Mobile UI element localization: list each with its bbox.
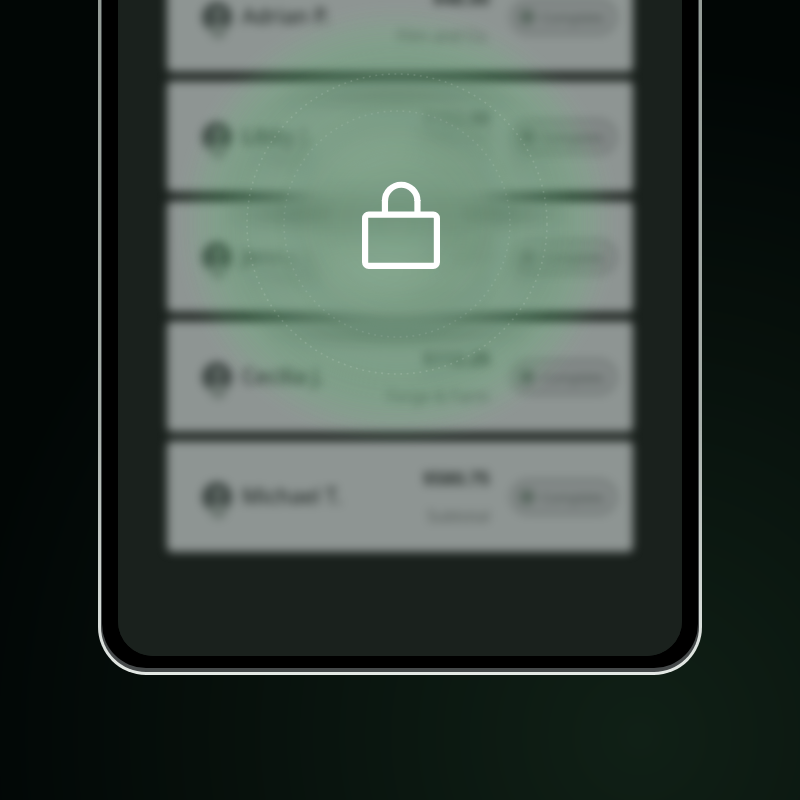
staticText: Libby J. bbox=[242, 122, 313, 151]
button[interactable]: Jenna R. bbox=[167, 218, 633, 329]
staticText: Forge & Farm bbox=[387, 385, 490, 407]
button[interactable]: Libby J. bbox=[167, 81, 633, 192]
button[interactable]: Complete bbox=[510, 376, 617, 412]
staticText: Cecilia J. bbox=[242, 362, 324, 391]
staticText: Jenna R. bbox=[242, 242, 323, 271]
button[interactable]: Jenna R. bbox=[167, 201, 633, 312]
staticText: Complete bbox=[541, 145, 605, 164]
button[interactable]: Complete bbox=[510, 239, 617, 275]
staticText: Adrian P. bbox=[242, 19, 330, 48]
button[interactable]: Complete bbox=[510, 496, 617, 532]
staticText: Michael T. bbox=[242, 499, 342, 528]
button[interactable]: Libby J. bbox=[167, 98, 633, 209]
staticText: Jenna R. bbox=[242, 259, 323, 288]
staticText: $112.25 bbox=[423, 346, 490, 371]
button[interactable]: Libby J. bbox=[167, 98, 633, 209]
staticText: $152.00 bbox=[423, 106, 490, 131]
staticText: Complete bbox=[541, 505, 605, 524]
button[interactable]: Complete bbox=[510, 16, 617, 52]
staticText: Green Market bbox=[386, 162, 490, 184]
button[interactable]: Complete bbox=[510, 256, 617, 292]
staticText: $48.00 bbox=[433, 3, 490, 28]
button[interactable]: Complete bbox=[510, 119, 617, 155]
button[interactable]: Complete bbox=[510, 359, 617, 395]
staticText: $76.50 bbox=[433, 243, 490, 268]
staticText: Complete bbox=[541, 128, 605, 147]
button[interactable]: Adrian P. bbox=[167, 0, 633, 89]
button[interactable]: Complete bbox=[510, 0, 617, 35]
button[interactable]: Cecilia J. bbox=[167, 321, 633, 432]
staticText: Green Market bbox=[386, 162, 490, 184]
button[interactable]: Michael T. bbox=[167, 458, 633, 569]
staticText: Cecilia J. bbox=[242, 379, 324, 408]
staticText: Jenna R. bbox=[242, 259, 323, 288]
staticText: Green Market bbox=[386, 145, 490, 167]
staticText: Adrian P. bbox=[242, 19, 330, 48]
staticText: Complete bbox=[541, 368, 605, 387]
staticText: $76.50 bbox=[433, 226, 490, 251]
button[interactable]: Complete bbox=[510, 136, 617, 172]
staticText: Michael T. bbox=[242, 499, 342, 528]
staticText: $112.25 bbox=[423, 363, 490, 388]
button[interactable]: Michael T. bbox=[167, 441, 633, 552]
staticText: Forge & Farm bbox=[387, 402, 490, 424]
staticText: Adrian P. bbox=[242, 2, 330, 31]
staticText: Complete bbox=[541, 265, 605, 284]
button[interactable]: Locked bbox=[355, 172, 447, 276]
staticText: Subtotal bbox=[427, 505, 490, 527]
staticText: Complete bbox=[541, 8, 605, 27]
button[interactable]: Adrian P. bbox=[167, 0, 633, 89]
button[interactable]: Adrian P. bbox=[167, 0, 633, 72]
staticText: Complete bbox=[541, 488, 605, 507]
staticText: Complete bbox=[541, 505, 605, 524]
staticText: Cecilia J. bbox=[242, 379, 324, 408]
button[interactable]: Complete bbox=[510, 16, 617, 52]
staticText: Libby J. bbox=[242, 139, 313, 168]
button[interactable]: Complete bbox=[510, 496, 617, 532]
staticText: $580.75 bbox=[423, 466, 490, 491]
staticText: Libby J. bbox=[242, 139, 313, 168]
button[interactable]: Complete bbox=[510, 256, 617, 292]
button[interactable]: Complete bbox=[510, 479, 617, 515]
staticText: Complete bbox=[541, 385, 605, 404]
staticText: $48.00 bbox=[433, 0, 490, 11]
staticText: Film and Co. bbox=[397, 25, 490, 47]
staticText: Complete bbox=[541, 248, 605, 267]
staticText: Coffee Lab bbox=[409, 265, 490, 287]
staticText: Complete bbox=[541, 265, 605, 284]
staticText: Complete bbox=[541, 385, 605, 404]
button[interactable]: Jenna R. bbox=[167, 218, 633, 329]
staticText: Michael T. bbox=[242, 482, 342, 511]
staticText: Complete bbox=[541, 25, 605, 44]
staticText: $580.75 bbox=[423, 483, 490, 508]
staticText: $112.25 bbox=[423, 363, 490, 388]
staticText: $76.50 bbox=[433, 243, 490, 268]
button[interactable]: Michael T. bbox=[167, 458, 633, 569]
staticText: Complete bbox=[541, 145, 605, 164]
button[interactable]: Cecilia J. bbox=[167, 338, 633, 449]
staticText: $580.75 bbox=[423, 483, 490, 508]
staticText: Forge & Farm bbox=[387, 402, 490, 424]
staticText: $48.00 bbox=[433, 3, 490, 28]
staticText: Complete bbox=[541, 25, 605, 44]
button[interactable]: Cecilia J. bbox=[167, 338, 633, 449]
button[interactable]: Complete bbox=[510, 136, 617, 172]
button[interactable]: Complete bbox=[510, 376, 617, 412]
